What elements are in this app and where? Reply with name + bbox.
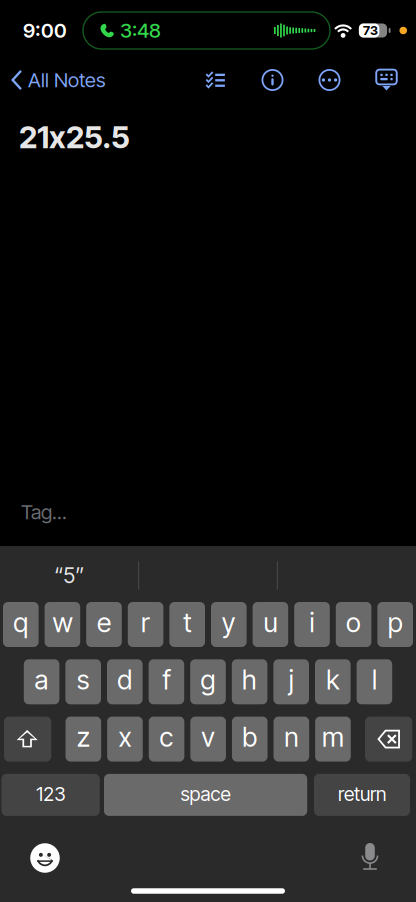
button[interactable]: p [377,602,413,647]
button[interactable]: Delete [365,717,412,762]
staticText: All Notes [28,68,106,92]
staticText: y [222,606,236,639]
button[interactable]: “5” [0,547,139,603]
staticText: u [263,606,277,639]
staticText: g [200,664,215,696]
staticText: 123 [36,782,65,806]
button[interactable]: s [65,659,101,704]
button[interactable]: n [273,717,309,762]
staticText: o [346,606,361,639]
button[interactable]: q [3,602,39,647]
button[interactable]: i [294,602,330,647]
button[interactable]: Info [244,58,301,102]
button[interactable]: x [107,717,143,762]
staticText: 73 [363,23,378,38]
staticText: p [388,606,403,639]
button[interactable]: w [45,602,80,647]
button[interactable]: z [65,717,101,762]
staticText: q [13,606,28,639]
staticText: i [309,606,314,639]
button[interactable]: r [128,602,163,647]
button[interactable]: u [253,602,288,647]
staticText: 9:00 [23,18,67,43]
staticText: j [289,664,294,696]
staticText: t [183,606,191,639]
button[interactable]: h [232,659,267,704]
staticText: z [77,721,90,753]
button[interactable]: Dictation [348,836,392,880]
button[interactable]: Checklist [187,58,244,102]
staticText: “5” [54,563,84,588]
staticText: a [35,664,49,696]
staticText: k [326,664,339,696]
staticText: f [162,664,170,696]
button[interactable]: More [301,58,358,102]
button[interactable]: All Notes [0,58,114,102]
staticText: space [181,782,231,806]
staticText: w [52,606,72,639]
staticText: b [242,721,257,753]
button[interactable]: c [149,717,184,762]
button[interactable]: return [314,774,410,816]
staticText: e [97,606,111,639]
staticText: n [284,721,298,753]
button[interactable]: e [86,602,122,647]
button[interactable]: g [190,659,226,704]
button[interactable]: space [104,774,307,816]
staticText: s [77,664,90,696]
staticText: h [242,664,257,696]
staticText: 21x25.5 [19,119,130,155]
button[interactable]: l [357,659,392,704]
button[interactable]: o [336,602,371,647]
button[interactable] [139,547,277,603]
button[interactable]: y [211,602,247,647]
button[interactable] [277,547,416,603]
staticText: return [338,782,386,806]
staticText: Tag... [21,500,67,524]
staticText: l [372,664,377,696]
button[interactable]: j [273,659,309,704]
button[interactable]: d [107,659,143,704]
button[interactable]: m [315,717,351,762]
button[interactable]: f [149,659,184,704]
button[interactable]: Emoji [23,836,67,880]
button[interactable]: v [190,717,226,762]
button[interactable]: Hide Keyboard [358,58,415,102]
staticText: m [322,721,344,753]
button[interactable]: b [232,717,267,762]
staticText: x [118,721,131,753]
button[interactable]: k [315,659,351,704]
button[interactable]: 123 [1,774,100,816]
staticText: r [141,606,150,639]
staticText: 3:48 [120,18,161,43]
button[interactable]: a [24,659,59,704]
staticText: d [117,664,132,696]
staticText: c [160,721,174,753]
button[interactable]: t [169,602,205,647]
button[interactable]: Shift [4,717,51,762]
staticText: v [201,721,215,753]
